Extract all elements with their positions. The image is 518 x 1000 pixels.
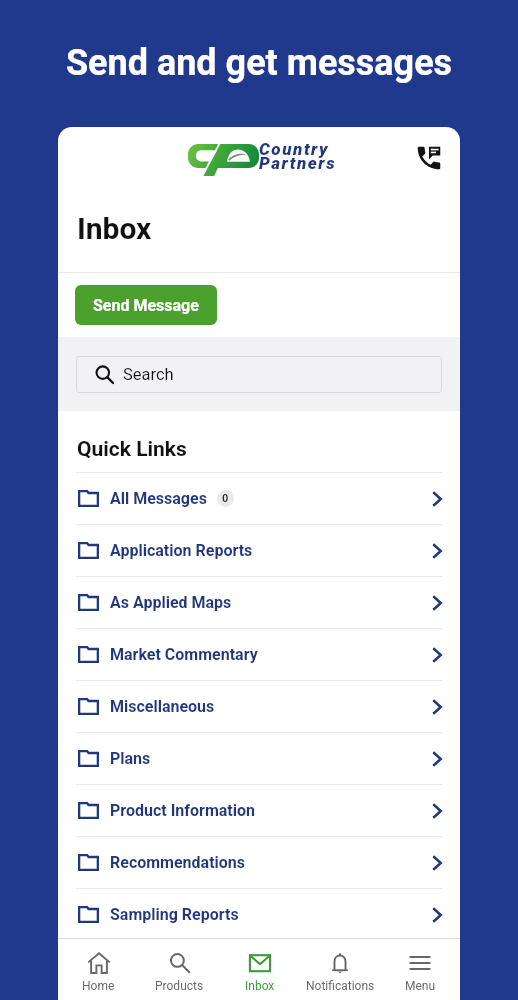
staticText: Partners: [259, 153, 337, 173]
button[interactable]: Plans: [76, 733, 442, 784]
staticText: Sampling Reports: [110, 905, 239, 924]
staticText: Quick Links: [77, 437, 187, 462]
button[interactable]: Send Message: [75, 285, 217, 325]
button[interactable]: Menu: [380, 939, 460, 1000]
staticText: Send and get messages: [0, 42, 518, 84]
staticText: Miscellaneous: [110, 697, 215, 716]
button[interactable]: Inbox: [220, 939, 300, 1000]
button[interactable]: Market Commentary: [76, 629, 442, 680]
button[interactable]: All Messages: [76, 473, 442, 524]
button[interactable]: As Applied Maps: [76, 577, 442, 628]
staticText: As Applied Maps: [110, 593, 232, 612]
button[interactable]: Application Reports: [76, 525, 442, 576]
staticText: Product Information: [110, 801, 255, 820]
button[interactable]: Sampling Reports: [76, 889, 442, 940]
staticText: 0: [222, 492, 229, 505]
staticText: Products: [155, 979, 204, 993]
button[interactable]: Search: [76, 356, 442, 393]
staticText: Plans: [110, 749, 151, 768]
staticText: Market Commentary: [110, 645, 258, 664]
button[interactable]: Notifications: [300, 939, 380, 1000]
button[interactable]: Recommendations: [76, 837, 442, 888]
staticText: Notifications: [306, 979, 375, 993]
button[interactable]: Miscellaneous: [76, 681, 442, 732]
button[interactable]: Products: [139, 939, 220, 1000]
staticText: All Messages: [110, 489, 207, 508]
staticText: Application Reports: [110, 541, 253, 560]
button[interactable]: Contact us: [410, 139, 448, 177]
button[interactable]: Home: [58, 939, 139, 1000]
button[interactable]: Product Information: [76, 785, 442, 836]
staticText: Search: [123, 365, 174, 384]
staticText: Country: [259, 139, 330, 159]
staticText: Home: [82, 979, 115, 993]
staticText: Send Message: [93, 296, 199, 315]
staticText: Inbox: [245, 979, 275, 993]
staticText: Menu: [405, 979, 436, 993]
staticText: Recommendations: [110, 853, 246, 872]
staticText: Inbox: [77, 211, 152, 246]
